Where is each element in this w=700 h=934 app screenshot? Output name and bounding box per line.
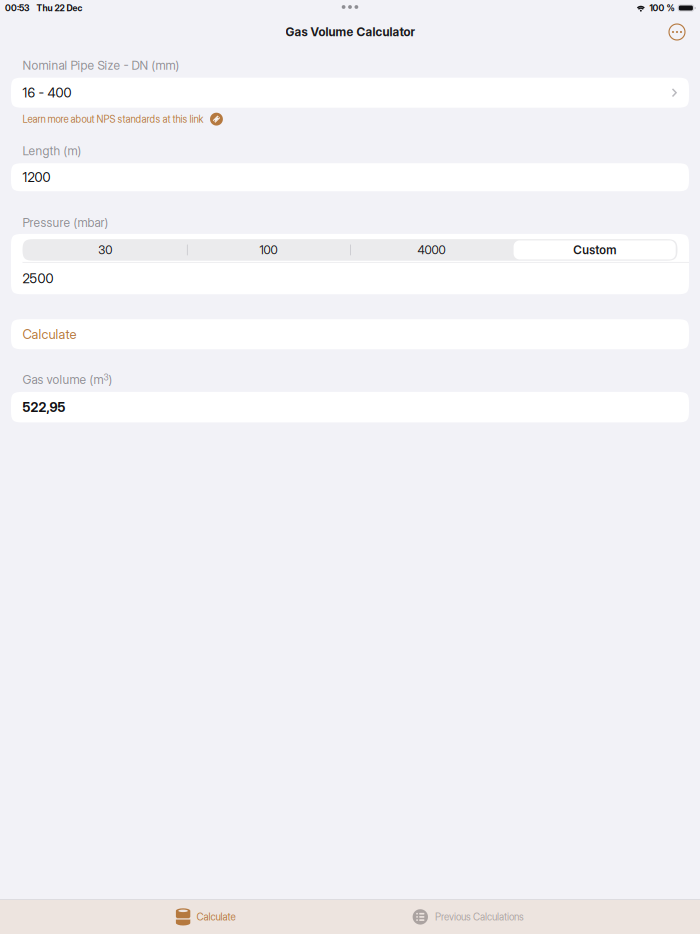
button[interactable]: More options [663, 18, 691, 46]
button[interactable]: 100 [187, 240, 350, 259]
button[interactable]: Calculate [0, 319, 700, 349]
button[interactable]: 30 [24, 240, 187, 259]
staticText: Length (m) [22, 144, 81, 158]
staticText: 4000 [417, 243, 445, 257]
staticText: Calculate [197, 911, 236, 923]
staticText: 100 [259, 243, 277, 257]
staticText: 100 % [650, 3, 675, 13]
button[interactable]: Previous Calculations [405, 902, 532, 932]
staticText: 2500 [22, 270, 53, 286]
staticText: Gas volume (m [22, 372, 103, 387]
staticText: Learn more about NPS standards at this l… [22, 113, 203, 125]
staticText: 30 [98, 243, 112, 257]
button[interactable]: Custom [513, 240, 676, 259]
staticText: Custom [573, 243, 616, 257]
staticText: 522,95 [22, 399, 65, 415]
staticText: Pressure (mbar) [22, 215, 108, 230]
staticText: Nominal Pipe Size - DN (mm) [22, 58, 179, 73]
staticText: 3 [103, 372, 108, 382]
button[interactable]: Calculate [168, 901, 244, 932]
button[interactable]: Learn more about NPS standards at this l… [0, 113, 700, 126]
staticText: 00:53 [5, 3, 29, 13]
staticText: 1200 [22, 169, 50, 185]
staticText: Gas Volume Calculator [285, 25, 414, 39]
staticText: Calculate [22, 326, 76, 342]
staticText: Previous Calculations [435, 911, 524, 923]
button[interactable]: 16 - 400 [0, 78, 700, 108]
button[interactable]: 4000 [350, 240, 513, 259]
staticText: ) [108, 372, 112, 387]
staticText: Thu 22 Dec [36, 3, 82, 13]
staticText: 16 - 400 [22, 85, 71, 101]
